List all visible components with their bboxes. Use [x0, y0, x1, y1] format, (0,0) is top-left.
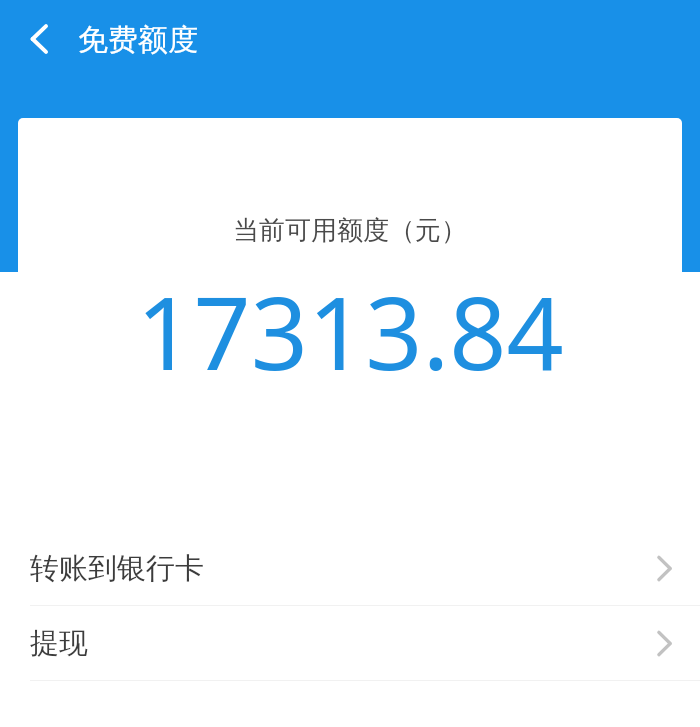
staticText: 当前可用额度（元）: [18, 214, 682, 247]
staticText: 17313.84: [18, 263, 682, 399]
staticText: 转账到银行卡: [30, 550, 657, 587]
staticText: 免费额度: [78, 21, 198, 59]
button[interactable]: 转账到银行卡: [0, 531, 700, 605]
button[interactable]: 提现: [0, 606, 700, 680]
button[interactable]: Back: [13, 13, 65, 65]
staticText: 提现: [30, 625, 657, 662]
